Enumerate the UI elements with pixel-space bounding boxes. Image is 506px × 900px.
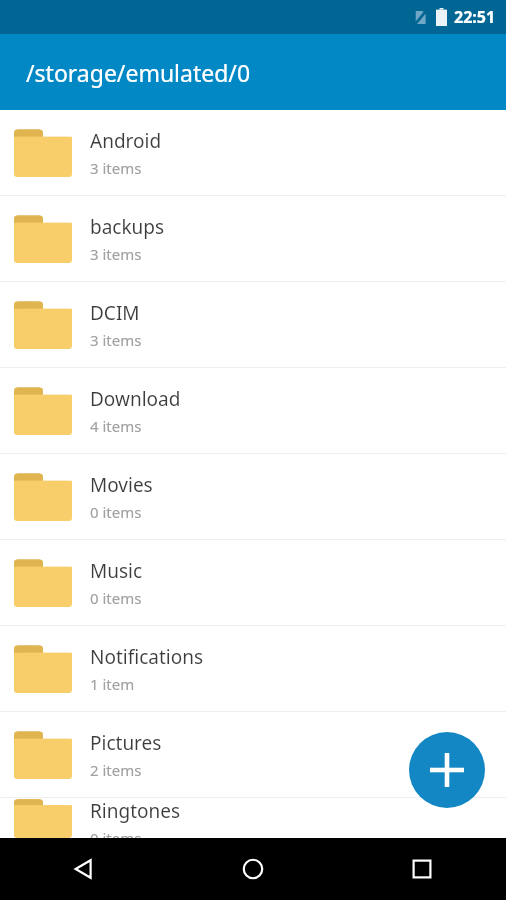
staticText: backups [90,214,165,240]
staticText: 4 items [90,416,142,436]
button[interactable]: Ringtones [0,798,506,838]
staticText: Download [90,386,181,412]
staticText: 3 items [90,158,142,178]
button[interactable]: Movies [0,454,506,539]
button[interactable]: Back [0,838,168,900]
staticText: Ringtones [90,798,181,824]
staticText: 1 item [90,674,135,694]
button[interactable]: Add [409,732,485,808]
staticText: Music [90,558,143,584]
button[interactable]: Android [0,110,506,195]
staticText: 0 items [90,588,142,608]
button[interactable]: backups [0,196,506,281]
staticText: /storage/emulated/0 [26,57,251,88]
staticText: Notifications [90,644,204,670]
button[interactable]: Home [168,838,337,900]
staticText: 0 items [90,502,142,522]
staticText: 3 items [90,330,142,350]
button[interactable]: Download [0,368,506,453]
button[interactable]: Recent apps [337,838,506,900]
button[interactable]: DCIM [0,282,506,367]
button[interactable]: Pictures [0,712,506,797]
button[interactable]: Notifications [0,626,506,711]
staticText: Android [90,128,162,154]
staticText: 0 items [90,828,142,838]
staticText: 3 items [90,244,142,264]
staticText: 2 items [90,760,142,780]
staticText: Movies [90,472,153,498]
staticText: DCIM [90,300,140,326]
staticText: 22:51 [454,6,496,28]
staticText: Pictures [90,730,162,756]
button[interactable]: Music [0,540,506,625]
